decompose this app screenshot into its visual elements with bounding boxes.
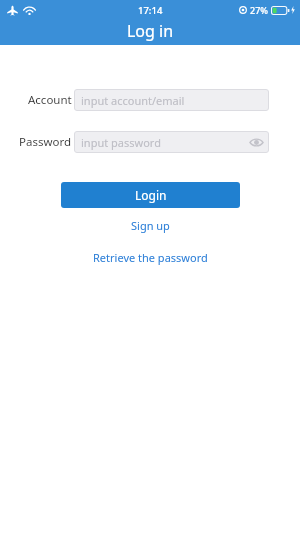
button[interactable]: Sign up [121,214,180,237]
button[interactable]: Show password [248,134,264,150]
staticText: 17:14 [138,4,163,17]
staticText: input account/email [81,93,185,108]
staticText: Login [135,187,167,203]
staticText: Log in [0,20,300,42]
staticText: 27% [250,4,268,16]
button[interactable]: Retrieve the password [83,246,218,269]
staticText: Retrieve the password [93,250,208,265]
button[interactable]: Login [61,182,240,208]
button[interactable]: input password [74,131,269,153]
button[interactable]: input account/email [74,89,269,111]
staticText: Account [28,92,72,108]
staticText: input password [81,135,161,150]
staticText: Password [19,134,72,150]
staticText: Sign up [131,218,170,233]
